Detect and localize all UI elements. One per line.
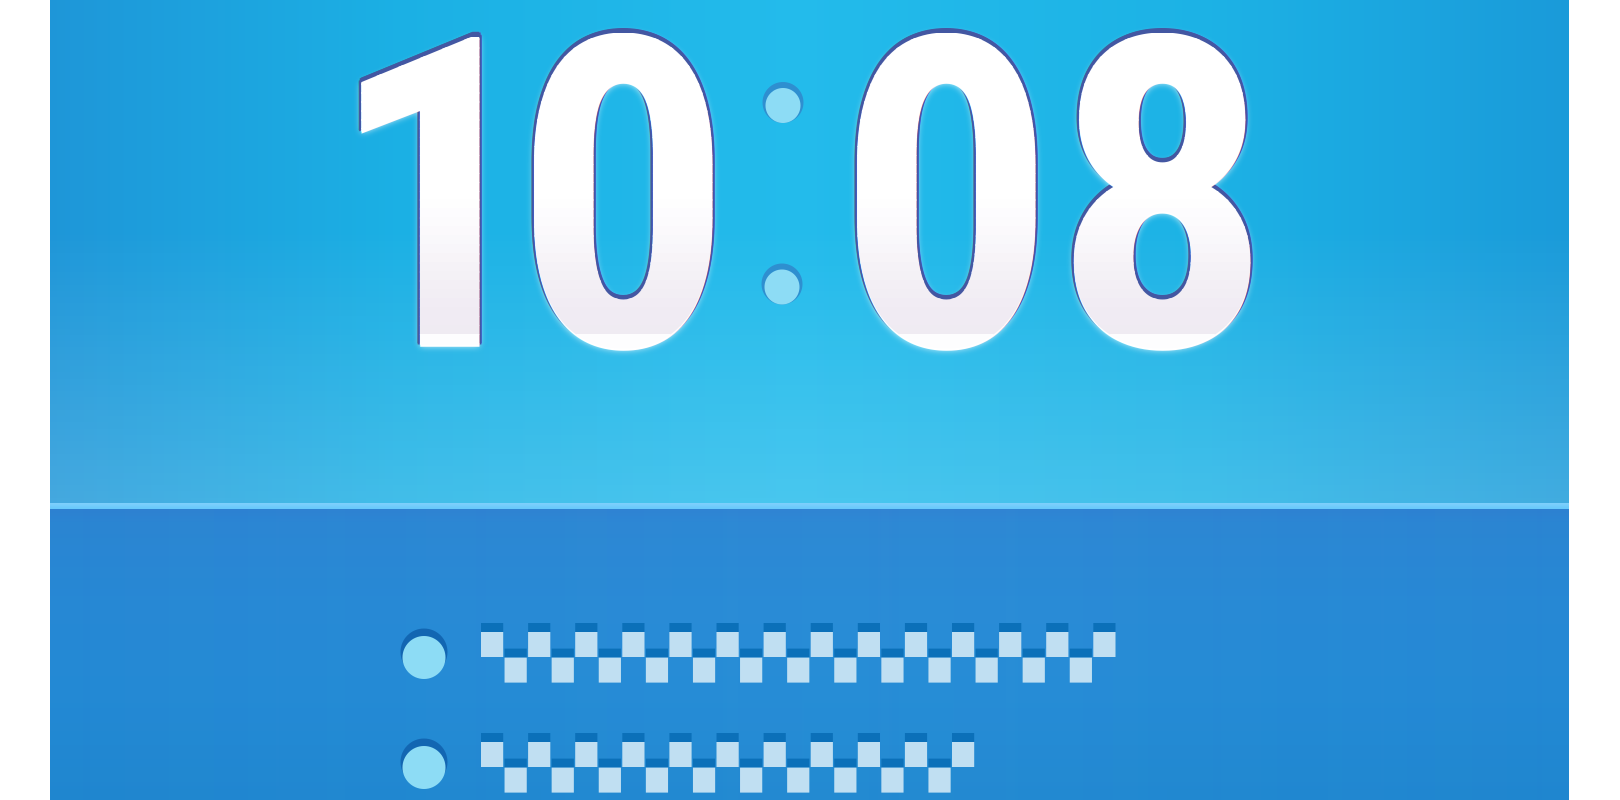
staticText: 0 [514, 0, 732, 450]
staticText: 1 [328, 0, 546, 450]
staticText: 0 [516, 0, 734, 446]
staticText: 1 [328, 0, 546, 450]
staticText: 8 [1053, 0, 1271, 450]
staticText: 1 [328, 0, 546, 450]
staticText: 0 [514, 0, 732, 450]
staticText: 0 [514, 0, 732, 450]
staticText: 8 [1055, 0, 1273, 449]
staticText: 1 [328, 0, 546, 450]
staticText: 8 [1053, 0, 1271, 450]
staticText: 0 [514, 0, 732, 450]
staticText: 0 [837, 0, 1055, 450]
staticText: 0 [514, 0, 732, 450]
staticText: 0 [514, 0, 732, 450]
staticText: 8 [1053, 0, 1271, 450]
staticText: 8 [1053, 0, 1271, 450]
staticText: 0 [837, 0, 1055, 450]
staticText: 1 [328, 0, 546, 450]
staticText: 1 [330, 0, 548, 446]
staticText: 0 [837, 0, 1055, 450]
staticText: 1 [326, 0, 544, 446]
staticText: 0 [837, 0, 1055, 450]
staticText: 0 [514, 0, 732, 450]
staticText: 8 [1053, 0, 1271, 450]
staticText: 8 [1053, 0, 1271, 450]
staticText: 0 [837, 0, 1055, 450]
staticText: 0 [514, 0, 732, 450]
staticText: 1 [330, 0, 548, 450]
staticText: 1 [328, 0, 546, 450]
staticText: 0 [837, 0, 1055, 450]
staticText: 1 [328, 0, 546, 450]
staticText: 0 [837, 0, 1055, 450]
staticText: 8 [1055, 0, 1273, 450]
staticText: 1 [328, 0, 546, 450]
staticText: 0 [835, 0, 1053, 446]
staticText: 8 [1053, 0, 1271, 452]
staticText: 8 [1053, 0, 1271, 450]
staticText: 1 [328, 0, 546, 450]
staticText: 8 [1053, 0, 1271, 450]
staticText: 0 [514, 0, 732, 450]
staticText: 0 [514, 0, 732, 452]
staticText: 0 [837, 0, 1055, 450]
staticText: 0 [514, 0, 732, 450]
staticText: 0 [837, 0, 1055, 450]
staticText: 8 [1053, 0, 1271, 446]
staticText: 8 [1053, 0, 1271, 450]
staticText: 0 [514, 0, 732, 450]
staticText: 8 [1053, 0, 1271, 450]
staticText: 0 [514, 0, 732, 450]
staticText: 1 [328, 0, 546, 450]
staticText: 1 [328, 0, 546, 450]
staticText: 0 [837, 0, 1055, 450]
staticText: 1 [328, 0, 546, 450]
staticText: 0 [837, 0, 1055, 450]
staticText: 0 [514, 0, 732, 450]
staticText: 1 [328, 0, 546, 450]
staticText: 0 [837, 0, 1055, 450]
staticText: 0 [514, 0, 732, 450]
staticText: 1 [328, 0, 546, 450]
staticText: 0 [514, 0, 732, 450]
staticText: 0 [837, 0, 1055, 450]
staticText: 1 [328, 0, 546, 450]
staticText: 0 [837, 0, 1055, 450]
staticText: 0 [514, 0, 732, 450]
staticText: 0 [514, 0, 732, 450]
staticText: 0 [835, 0, 1053, 449]
staticText: 0 [512, 0, 730, 449]
staticText: 8 [1053, 0, 1271, 450]
staticText: 0 [514, 0, 732, 450]
staticText: 8 [1053, 0, 1271, 450]
staticText: 8 [1053, 0, 1271, 450]
staticText: 8 [1053, 0, 1271, 450]
staticText: 8 [1053, 0, 1271, 450]
staticText: 1 [328, 0, 546, 450]
staticText: 0 [514, 0, 732, 450]
staticText: 0 [512, 0, 730, 450]
staticText: 0 [514, 0, 732, 450]
staticText: 1 [328, 0, 546, 450]
staticText: 1 [328, 0, 546, 450]
staticText: 0 [514, 0, 732, 450]
staticText: 0 [837, 0, 1055, 450]
staticText: 8 [1053, 0, 1271, 450]
staticText: 8 [1053, 0, 1271, 450]
staticText: 8 [1053, 0, 1271, 450]
staticText: 0 [514, 0, 732, 450]
staticText: 0 [516, 0, 734, 450]
staticText: 0 [837, 0, 1055, 450]
staticText: 0 [514, 0, 732, 450]
staticText: 8 [1053, 0, 1271, 450]
staticText: 0 [514, 0, 732, 450]
staticText: 1 [328, 0, 546, 450]
staticText: 8 [1053, 0, 1271, 450]
staticText: 0 [514, 0, 732, 450]
staticText: 8 [1053, 0, 1271, 450]
staticText: 0 [839, 0, 1057, 449]
staticText: 1 [326, 0, 544, 450]
staticText: 8 [1053, 0, 1271, 450]
staticText: 1 [328, 0, 546, 450]
staticText: 0 [837, 0, 1055, 450]
